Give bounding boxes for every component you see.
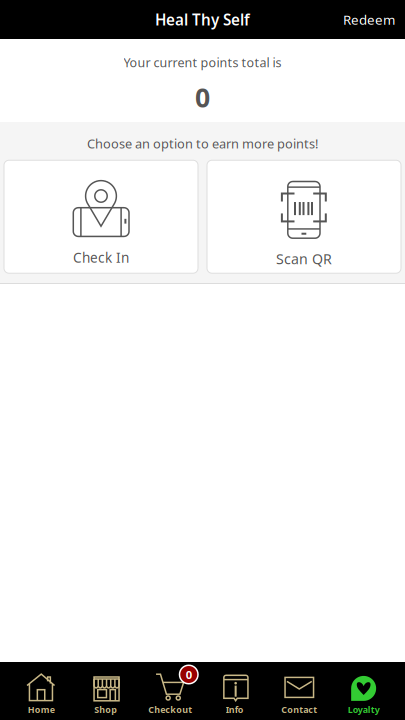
staticText: Choose an option to earn more points! <box>87 135 318 152</box>
staticText: Redeem <box>343 10 395 29</box>
button[interactable]: Contact <box>267 662 331 720</box>
button[interactable]: Home <box>9 662 73 720</box>
staticText: Home <box>28 703 55 716</box>
staticText: Contact <box>281 703 317 716</box>
button[interactable]: Loyalty <box>331 662 396 720</box>
button[interactable]: Check In <box>4 160 198 273</box>
button[interactable]: Info <box>202 662 267 720</box>
staticText: Scan QR <box>276 249 332 268</box>
staticText: Shop <box>94 703 117 716</box>
staticText: 0 <box>186 667 192 682</box>
staticText: 0 <box>195 79 210 115</box>
button[interactable]: Redeem <box>333 2 405 37</box>
button[interactable]: Scan QR <box>207 160 401 273</box>
staticText: 0 <box>186 667 192 682</box>
staticText: Checkout <box>148 703 192 716</box>
button[interactable]: Shop <box>73 662 138 720</box>
button[interactable]: 0 <box>138 662 202 720</box>
staticText: Your current points total is <box>123 54 281 71</box>
staticText: Info <box>226 703 244 716</box>
staticText: Check In <box>73 248 129 267</box>
staticText: Loyalty <box>348 703 380 716</box>
staticText: Heal Thy Self <box>155 9 250 30</box>
